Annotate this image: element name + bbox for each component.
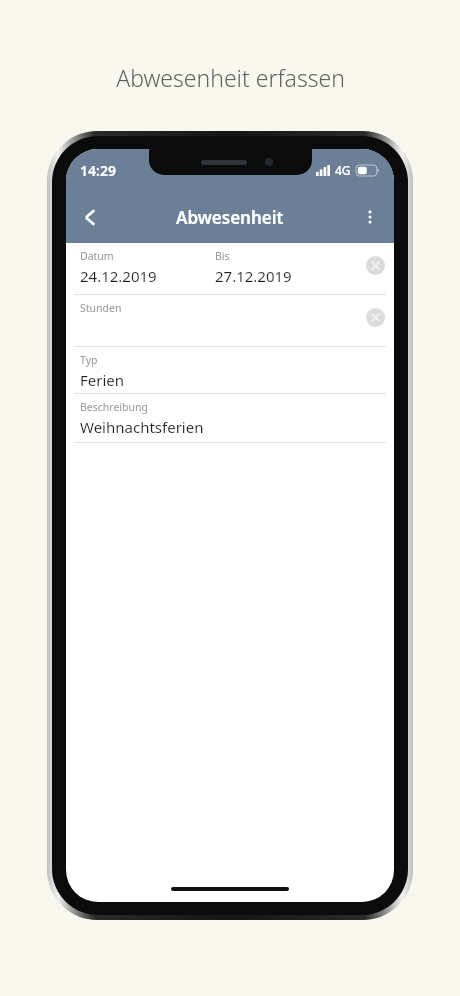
- staticText: Weihnachtsferien: [80, 417, 204, 437]
- staticText: Typ: [80, 353, 98, 367]
- staticText: 24.12.2019: [80, 266, 157, 286]
- button[interactable]: Zurück: [66, 191, 114, 243]
- staticText: Stunden: [80, 301, 122, 315]
- staticText: Bis: [215, 249, 230, 263]
- staticText: 4G: [335, 162, 351, 178]
- button[interactable]: Stunden löschen: [366, 308, 385, 327]
- staticText: Datum: [80, 249, 114, 263]
- button[interactable]: Mehr Optionen: [346, 191, 394, 243]
- staticText: Ferien: [80, 370, 125, 390]
- staticText: Abwesenheit erfassen: [116, 62, 345, 93]
- staticText: 27.12.2019: [215, 266, 292, 286]
- button[interactable]: Beschreibung: [73, 394, 387, 442]
- staticText: Beschreibung: [80, 400, 148, 414]
- button[interactable]: Datum löschen: [366, 256, 385, 275]
- staticText: Abwesenheit: [176, 206, 284, 229]
- staticText: 14:29: [80, 161, 116, 180]
- button[interactable]: Typ: [73, 347, 387, 393]
